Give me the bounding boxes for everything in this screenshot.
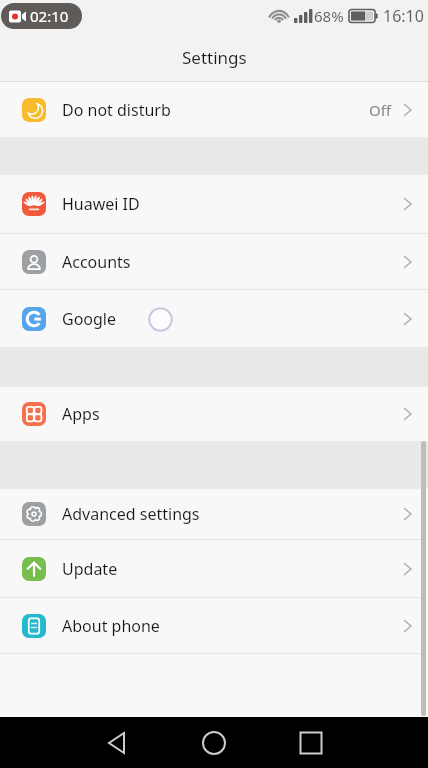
staticText: Update — [62, 558, 118, 580]
button[interactable]: Advanced settings — [0, 489, 428, 539]
staticText: Advanced settings — [62, 503, 200, 525]
button[interactable]: Apps — [0, 387, 428, 441]
button[interactable] — [104, 730, 130, 756]
staticText: Do not disturb — [62, 99, 171, 121]
staticText: 16:10 — [383, 5, 424, 27]
button[interactable]: Update — [0, 540, 428, 597]
staticText: Huawei ID — [62, 193, 140, 215]
button[interactable] — [298, 730, 324, 756]
button[interactable] — [201, 730, 227, 756]
staticText: Accounts — [62, 251, 131, 273]
staticText: Off — [369, 100, 392, 120]
staticText: Settings — [182, 46, 247, 69]
staticText: About phone — [62, 615, 160, 637]
staticText: 02:10 — [30, 6, 69, 26]
button[interactable]: Do not disturb — [0, 82, 428, 137]
button[interactable]: About phone — [0, 598, 428, 653]
button[interactable]: Accounts — [0, 234, 428, 289]
staticText: Apps — [62, 403, 100, 425]
staticText: 68% — [314, 6, 344, 26]
staticText: Google — [62, 308, 117, 330]
button[interactable]: Google — [0, 290, 428, 347]
button[interactable]: Huawei ID — [0, 175, 428, 233]
